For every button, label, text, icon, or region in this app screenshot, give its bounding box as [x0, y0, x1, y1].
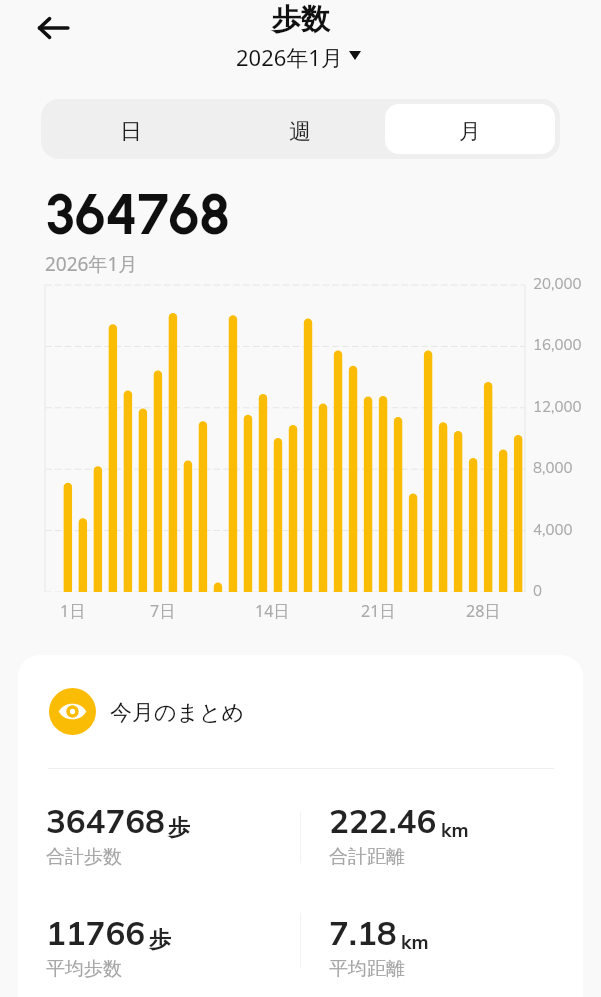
staticText: 合計歩数	[46, 845, 122, 869]
button[interactable]: 7.18	[329, 912, 429, 981]
staticText: 14日	[255, 600, 290, 622]
staticText: 今月のまとめ	[110, 699, 245, 727]
button[interactable]: Back	[31, 6, 75, 50]
staticText: 12,000	[533, 397, 582, 416]
button[interactable]: 364768	[46, 800, 190, 869]
staticText: 364768	[46, 181, 230, 248]
button[interactable]: Monthly summary	[49, 688, 96, 735]
staticText: 月	[459, 118, 481, 146]
button[interactable]: 222.46	[329, 800, 469, 869]
staticText: 合計距離	[329, 845, 405, 869]
staticText: 歩	[168, 814, 190, 842]
button[interactable]: 日	[46, 104, 215, 154]
staticText: 日	[120, 118, 142, 146]
staticText: 28日	[466, 600, 501, 622]
button[interactable]: 週	[215, 104, 385, 154]
staticText: 8,000	[533, 458, 573, 477]
button[interactable]: Select month	[232, 40, 366, 70]
staticText: km	[401, 930, 429, 954]
staticText: 21日	[361, 600, 396, 622]
staticText: 20,000	[533, 274, 582, 293]
staticText: 364768	[46, 800, 165, 841]
staticText: 1日	[60, 600, 86, 622]
staticText: 7.18	[329, 912, 397, 953]
staticText: 歩	[149, 926, 171, 954]
staticText: 2026年1月	[45, 251, 138, 277]
button[interactable]: 月	[385, 104, 555, 154]
staticText: 4,000	[533, 520, 573, 539]
staticText: 歩数	[272, 1, 330, 38]
staticText: 週	[289, 118, 311, 146]
staticText: 11766	[46, 912, 146, 953]
staticText: 2026年1月	[236, 42, 343, 72]
staticText: 222.46	[329, 800, 437, 841]
staticText: 平均歩数	[46, 957, 122, 981]
staticText: 0	[533, 581, 543, 600]
staticText: km	[441, 818, 469, 842]
staticText: 平均距離	[329, 957, 405, 981]
staticText: 16,000	[533, 335, 582, 354]
button[interactable]: 11766	[46, 912, 171, 981]
staticText: 7日	[150, 600, 176, 622]
